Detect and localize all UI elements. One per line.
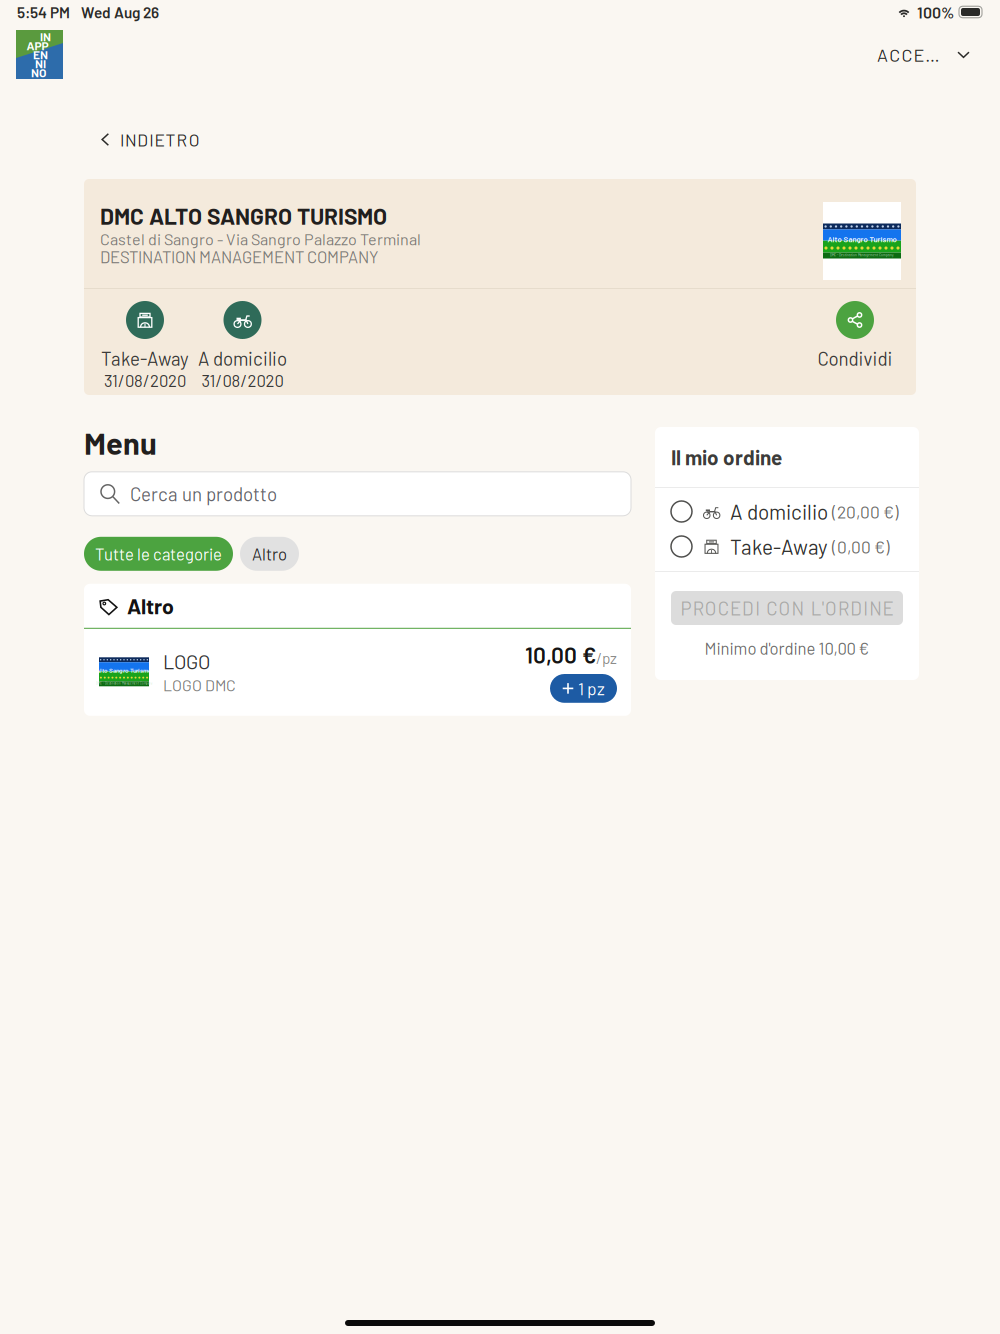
staticText: Alto Sangro Turismo [827,234,896,244]
button[interactable]: A domicilio [204,301,281,390]
staticText: Take-Away [730,534,828,559]
staticText: 100% [917,2,954,22]
staticText: Wed Aug 26 [81,3,159,21]
staticText: NI [35,56,46,71]
staticText: DMC - Destination Management Company [830,253,894,257]
button[interactable]: Take-Away [671,529,905,564]
staticText: 10,00 € [525,641,596,668]
staticText: (0,00 €) [832,536,890,557]
staticText: Altro [252,544,287,564]
staticText: /pz [596,649,617,667]
staticText: Menu [84,424,157,461]
staticText: Castel di Sangro - Via Sangro Palazzo Te… [100,229,421,249]
staticText: Cerca un prodotto [130,483,277,505]
staticText: IN [40,29,51,44]
button[interactable]: 1 pz [550,674,617,703]
button[interactable]: Tutte le categorie [84,537,233,571]
button[interactable]: Condividi [796,301,914,369]
staticText: 31/08/2020 [104,370,186,390]
staticText: DMC - Destination Management Company [96,681,152,685]
staticText: DESTINATION MANAGEMENT COMPANY [100,247,378,267]
staticText: (20,00 €) [832,501,899,522]
staticText: PROCEDI CON L'ORDINE [681,597,893,619]
staticText: LOGO DMC [163,675,236,694]
staticText: INDIETRO [120,129,200,150]
button[interactable]: INDIETRO [99,122,200,157]
staticText: A domicilio [198,347,287,369]
staticText: EN [33,47,48,62]
staticText: Minimo d'ordine 10,00 € [704,638,869,658]
staticText: Altro [127,593,174,619]
staticText: 1 pz [578,678,605,699]
button[interactable]: Take-Away [86,301,204,390]
button[interactable]: In Appennino [16,30,63,79]
button[interactable]: Altro [240,537,299,571]
staticText: ACCEDI [877,44,943,65]
staticText: Alto Sangro Turismo [96,666,152,674]
staticText: 5:54 PM [17,3,70,21]
staticText: NO [31,65,46,80]
staticText: 31/08/2020 [201,370,283,390]
button[interactable]: PROCEDI CON L'ORDINE [671,591,903,625]
staticText: A domicilio [730,499,828,524]
staticText: DMC ALTO SANGRO TURISMO [100,202,387,229]
staticText: LOGO [163,649,210,673]
staticText: Tutte le categorie [95,544,222,564]
staticText: Take-Away [101,347,189,369]
staticText: APP [26,38,48,53]
button[interactable]: A domicilio [671,494,905,529]
staticText: Il mio ordine [671,445,782,469]
button[interactable]: ACCEDI [877,38,970,71]
staticText: Condividi [817,347,892,369]
